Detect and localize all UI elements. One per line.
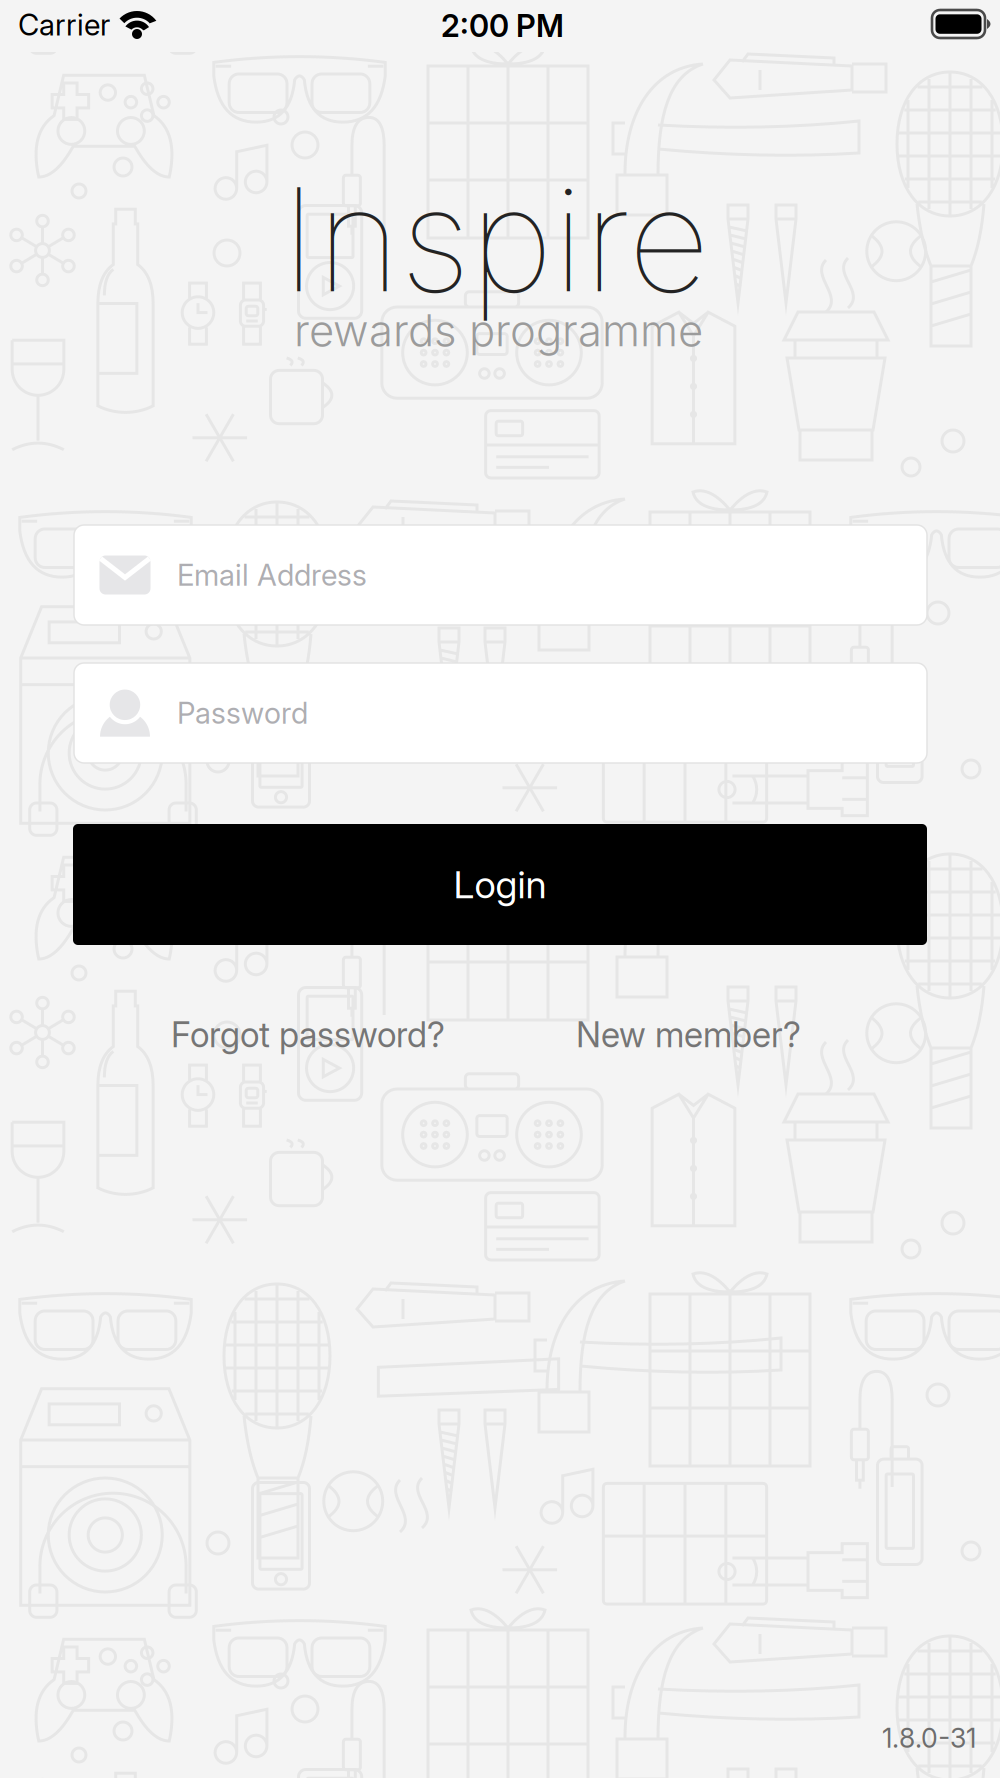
staticText: Carrier [18,7,110,42]
staticText: Login [453,861,546,907]
button[interactable]: New member? [576,1014,801,1056]
button[interactable]: Forgot password? [171,1014,445,1056]
staticText: 2:00 PM [441,7,564,44]
staticText: Email Address [177,557,367,593]
staticText: Inspire [281,153,710,326]
button[interactable]: Login [73,824,927,945]
button[interactable]: Password [74,663,927,763]
staticText: 1.8.0-31 [882,1722,976,1754]
staticText: rewards programme [294,304,703,357]
staticText: Forgot password? [171,1014,445,1056]
staticText: New member? [576,1014,801,1056]
staticText: Password [177,695,308,731]
button[interactable]: Email Address [74,525,927,625]
